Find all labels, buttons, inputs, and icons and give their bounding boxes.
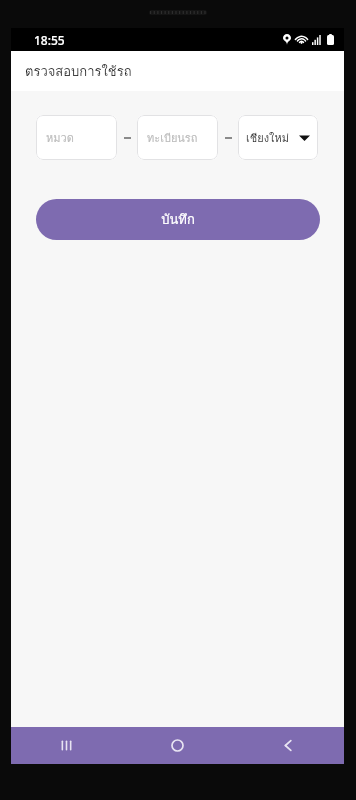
button[interactable]: Recent apps bbox=[11, 727, 122, 764]
button[interactable]: Home bbox=[122, 727, 233, 764]
button[interactable]: Back bbox=[233, 727, 344, 764]
staticText: เชียงใหม่ bbox=[246, 129, 289, 146]
staticText: บันทึก bbox=[161, 209, 195, 230]
button[interactable]: หมวด bbox=[36, 115, 117, 160]
button[interactable]: เชียงใหม่ bbox=[238, 115, 318, 160]
staticText: ตรวจสอบการใช้รถ bbox=[25, 61, 132, 82]
staticText: หมวด bbox=[46, 129, 74, 146]
staticText: 18:55 bbox=[34, 32, 65, 48]
staticText: ทะเบียนรถ bbox=[147, 129, 198, 146]
button[interactable]: ทะเบียนรถ bbox=[137, 115, 218, 160]
other: Select province bbox=[299, 134, 310, 142]
button[interactable]: บันทึก bbox=[36, 199, 320, 240]
